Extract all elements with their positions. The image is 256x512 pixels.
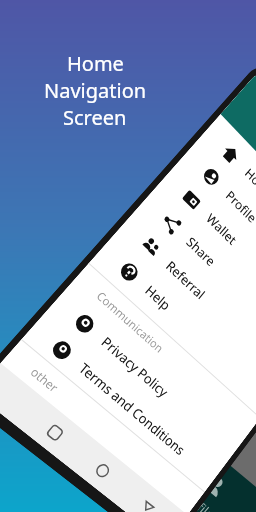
staticText: Screen	[63, 104, 127, 131]
button[interactable]: Privacy Policy	[45, 286, 244, 466]
button[interactable]: Referral	[114, 210, 256, 390]
staticText: Help	[141, 281, 175, 315]
staticText: Wallet	[203, 209, 240, 248]
button[interactable]: Help	[92, 235, 256, 414]
staticText: Communication	[94, 288, 167, 356]
staticText: Profile	[178, 486, 218, 512]
other: Home	[94, 462, 111, 479]
button[interactable]: Profile	[177, 140, 256, 320]
staticText: Home	[242, 164, 256, 202]
staticText: Share	[183, 233, 219, 270]
button[interactable]: Home	[197, 118, 256, 298]
button[interactable]: Wallet	[156, 163, 256, 343]
staticText: Profile	[222, 187, 256, 227]
staticText: Home	[67, 50, 124, 77]
button[interactable]: Terms and Conditions	[22, 312, 224, 492]
staticText: Privacy Policy	[97, 332, 173, 402]
staticText: other	[27, 363, 63, 396]
staticText: Navigation	[44, 77, 147, 104]
button[interactable]: Share	[135, 186, 256, 366]
button[interactable]: Profile	[178, 465, 237, 512]
staticText: Referral	[162, 257, 209, 303]
other: Back	[140, 499, 156, 512]
other: Recents	[46, 424, 64, 441]
staticText: Terms and Conditions	[75, 358, 189, 460]
